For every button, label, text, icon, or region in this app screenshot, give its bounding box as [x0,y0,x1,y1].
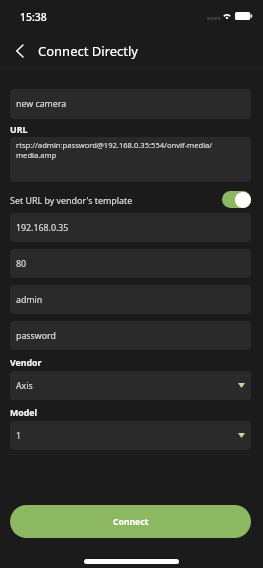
button[interactable]: new camera [10,89,251,119]
button[interactable]: admin [10,285,251,314]
button[interactable]: password [10,321,251,350]
staticText: new camera [16,98,67,110]
button[interactable]: 80 [10,249,251,278]
staticText: 1 [16,430,22,442]
staticText: admin [16,294,43,306]
staticText: password [16,330,56,342]
button[interactable]: 1 [10,421,251,450]
staticText: Vendor [10,357,42,369]
button[interactable]: Back [7,39,31,63]
staticText: Axis [16,380,33,392]
staticText: 80 [16,258,27,270]
staticText: Connect Directly [38,42,138,60]
button[interactable]: 192.168.0.35 [10,213,251,242]
staticText: URL [10,124,28,136]
staticText: rtsp://admin:password@192.168.0.35:554/o… [16,140,213,160]
staticText: Set URL by vendor's template [10,194,133,206]
button[interactable]: Set URL by vendor's template [222,191,251,208]
staticText: 15:38 [20,10,47,24]
staticText: Model [10,407,38,419]
button[interactable]: Set URL by vendor's template [10,187,251,211]
staticText: 192.168.0.35 [16,222,69,234]
button[interactable]: rtsp://admin:password@192.168.0.35:554/o… [10,137,251,182]
button[interactable]: Axis [10,371,251,400]
staticText: Connect [113,516,149,528]
button[interactable]: Connect [10,505,251,538]
